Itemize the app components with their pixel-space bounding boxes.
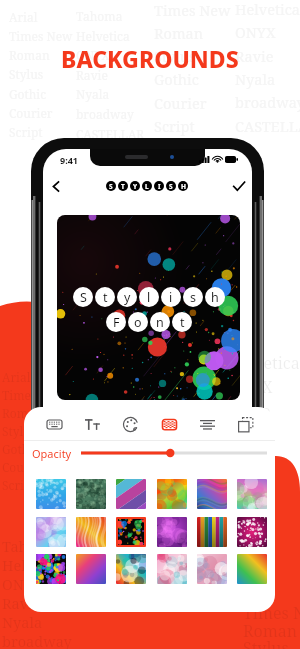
- staticText: Ravie: [235, 46, 274, 66]
- staticText: CASTELLAR: [235, 116, 300, 136]
- button[interactable]: Keyboard: [40, 410, 68, 438]
- button[interactable]: [76, 554, 106, 584]
- staticText: S: [109, 182, 113, 191]
- staticText: Arial: [2, 369, 31, 385]
- staticText: I: [158, 182, 161, 191]
- staticText: ONYX: [235, 22, 276, 42]
- staticText: Helvetica: [76, 28, 130, 44]
- staticText: Nyala: [76, 86, 110, 102]
- button[interactable]: Done: [228, 175, 250, 197]
- button[interactable]: [197, 554, 227, 584]
- staticText: Stylus: [150, 418, 192, 438]
- button[interactable]: [116, 479, 146, 509]
- button[interactable]: Background: [155, 410, 183, 438]
- staticText: Roman: [9, 47, 50, 63]
- button[interactable]: [36, 479, 66, 509]
- button[interactable]: [237, 554, 267, 584]
- staticText: Tahoma: [76, 8, 123, 24]
- button[interactable]: Opacity slider: [81, 447, 267, 459]
- staticText: o: [134, 314, 142, 331]
- staticText: Roman: [154, 23, 204, 43]
- button[interactable]: Color: [116, 410, 144, 438]
- staticText: Y: [133, 182, 138, 191]
- button[interactable]: [116, 517, 146, 547]
- staticText: S: [169, 182, 173, 191]
- staticText: Times New: [150, 374, 227, 394]
- staticText: Stylus: [9, 66, 44, 82]
- button[interactable]: [116, 554, 146, 584]
- button[interactable]: [237, 517, 267, 547]
- staticText: Gothic: [2, 441, 40, 457]
- staticText: h: [211, 289, 219, 306]
- staticText: Times New: [9, 28, 73, 44]
- staticText: n: [156, 314, 164, 331]
- staticText: Opacity: [32, 446, 72, 461]
- staticText: Helvetica: [2, 555, 67, 575]
- staticText: broadway: [2, 631, 72, 649]
- staticText: Tahoma: [2, 536, 59, 556]
- staticText: Gothic: [9, 86, 47, 102]
- staticText: CASTELLAR: [76, 126, 145, 142]
- button[interactable]: Text size: [78, 410, 106, 438]
- staticText: Nyala: [228, 424, 273, 446]
- button[interactable]: [157, 517, 187, 547]
- staticText: t: [180, 314, 185, 331]
- staticText: Gothic: [154, 69, 199, 89]
- staticText: Arial: [150, 352, 185, 372]
- staticText: BACKGROUNDS: [61, 43, 239, 74]
- button[interactable]: [197, 479, 227, 509]
- staticText: ONYX: [76, 47, 110, 63]
- button[interactable]: [36, 517, 66, 547]
- staticText: Stylus: [154, 46, 196, 66]
- staticText: ONYX: [2, 574, 43, 594]
- staticText: broadway: [235, 92, 300, 112]
- staticText: F: [113, 314, 120, 331]
- staticText: Nyala: [235, 69, 276, 89]
- staticText: Ravie: [228, 400, 271, 422]
- staticText: Times New: [154, 0, 231, 20]
- staticText: i: [169, 289, 173, 306]
- staticText: Script: [9, 124, 43, 140]
- staticText: Script: [154, 116, 195, 136]
- staticText: Nyala: [2, 612, 43, 632]
- button[interactable]: [76, 479, 106, 509]
- staticText: Gothic: [150, 440, 195, 460]
- staticText: ONYX: [228, 376, 273, 398]
- button[interactable]: [197, 517, 227, 547]
- staticText: H: [181, 182, 186, 191]
- staticText: Arial: [9, 9, 38, 25]
- button[interactable]: [157, 479, 187, 509]
- button[interactable]: Alignment: [193, 410, 221, 438]
- button[interactable]: Layers: [231, 410, 259, 438]
- staticText: Script: [2, 477, 36, 493]
- staticText: Roman: [2, 405, 43, 421]
- staticText: y: [124, 289, 131, 306]
- staticText: Ravie: [76, 67, 108, 83]
- button[interactable]: [76, 517, 106, 547]
- staticText: Helvetica: [228, 352, 300, 374]
- staticText: l: [147, 289, 151, 306]
- staticText: Ravie: [2, 593, 41, 613]
- staticText: broadway: [76, 106, 134, 122]
- staticText: Roman: [243, 620, 298, 642]
- staticText: Courier: [154, 93, 207, 113]
- staticText: Roman: [150, 396, 200, 416]
- staticText: s: [190, 289, 196, 306]
- staticText: S: [80, 289, 87, 306]
- staticText: Times New: [243, 602, 300, 624]
- staticText: Courier: [9, 105, 53, 121]
- staticText: Stylus: [2, 423, 37, 439]
- staticText: 9:41: [60, 154, 78, 166]
- staticText: Times New: [2, 387, 66, 403]
- button[interactable]: Back: [45, 175, 67, 197]
- staticText: Stylus: [243, 637, 289, 649]
- staticText: t: [103, 289, 108, 306]
- staticText: Courier: [2, 459, 46, 475]
- staticText: L: [145, 182, 149, 191]
- button[interactable]: [36, 554, 66, 584]
- button[interactable]: [237, 479, 267, 509]
- staticText: Helvetica: [235, 0, 300, 19]
- staticText: T: [121, 182, 125, 191]
- button[interactable]: [157, 554, 187, 584]
